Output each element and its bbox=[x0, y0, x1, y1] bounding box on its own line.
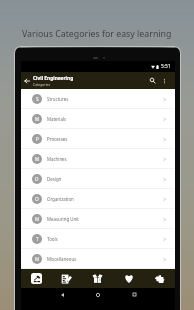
button[interactable]: M bbox=[21, 149, 175, 169]
staticText: Design bbox=[47, 176, 62, 182]
button[interactable]: Recents bbox=[129, 288, 139, 301]
button[interactable]: P bbox=[21, 129, 175, 149]
button[interactable]: M bbox=[21, 209, 175, 229]
staticText: Civil Engineering bbox=[33, 75, 74, 82]
staticText: Processes bbox=[47, 136, 68, 142]
staticText: Categories bbox=[33, 82, 51, 87]
staticText: M bbox=[35, 156, 40, 163]
button[interactable]: Search bbox=[145, 72, 159, 89]
button[interactable]: Notes bbox=[51, 269, 82, 288]
staticText: M bbox=[35, 116, 40, 123]
staticText: T bbox=[36, 236, 39, 243]
button[interactable]: Products bbox=[82, 269, 113, 288]
staticText: 5:51 bbox=[161, 63, 171, 70]
button[interactable]: Home bbox=[93, 288, 103, 301]
button[interactable]: Back bbox=[57, 288, 67, 301]
staticText: Machines bbox=[47, 156, 67, 162]
button[interactable]: M bbox=[21, 249, 175, 269]
button[interactable]: D bbox=[21, 169, 175, 189]
staticText: M bbox=[35, 216, 40, 223]
staticText: Organization bbox=[47, 196, 74, 202]
button[interactable]: Favourites bbox=[113, 269, 144, 288]
staticText: M bbox=[35, 256, 40, 263]
staticText: Various Categories for easy learning bbox=[22, 28, 172, 40]
button[interactable]: T bbox=[21, 229, 175, 249]
button[interactable]: M bbox=[21, 109, 175, 129]
button[interactable]: S bbox=[21, 89, 175, 109]
staticText: S bbox=[36, 96, 39, 103]
button[interactable]: Quiz bbox=[144, 269, 175, 288]
staticText: Materials bbox=[47, 116, 67, 122]
staticText: P bbox=[36, 136, 39, 143]
button[interactable]: Categories bbox=[21, 269, 51, 288]
button[interactable]: O bbox=[21, 189, 175, 209]
staticText: Tools bbox=[47, 236, 58, 242]
staticText: Structures bbox=[47, 96, 69, 102]
button[interactable]: More options bbox=[159, 72, 170, 89]
button[interactable]: Back bbox=[21, 72, 33, 89]
staticText: Measuring Unit bbox=[47, 216, 79, 222]
staticText: O bbox=[35, 196, 39, 203]
staticText: D bbox=[35, 176, 39, 183]
staticText: Miscellaneous bbox=[47, 256, 77, 262]
